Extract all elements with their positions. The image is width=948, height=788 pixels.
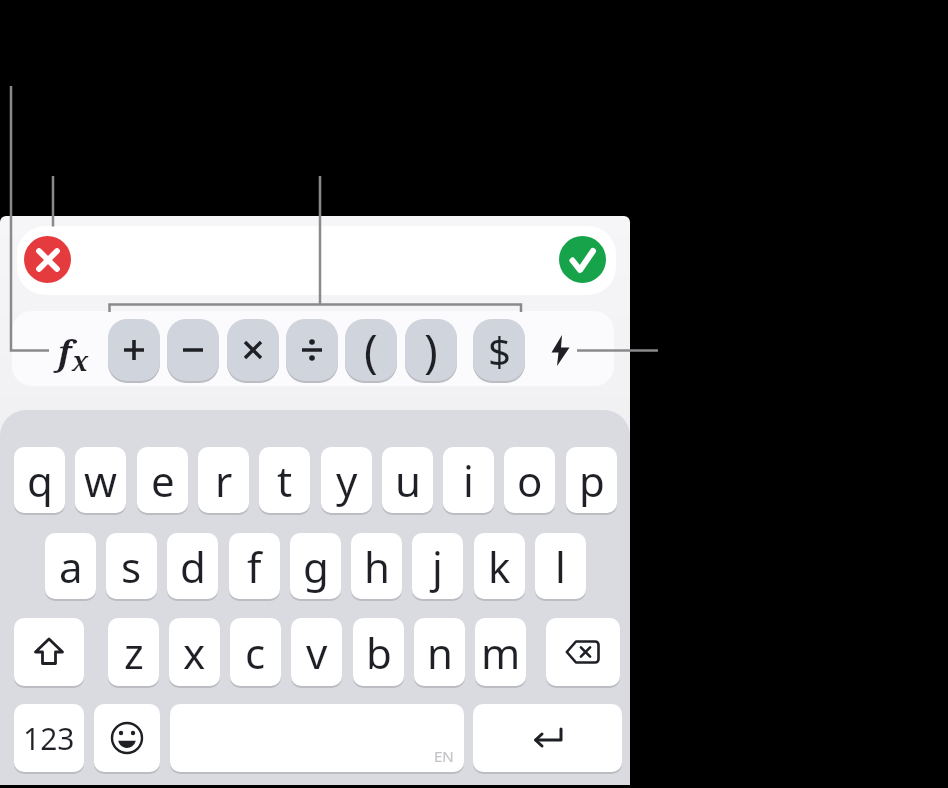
button[interactable]: 123 <box>14 704 84 772</box>
button[interactable] <box>227 319 279 381</box>
button[interactable]: q <box>14 447 65 513</box>
button[interactable] <box>473 704 622 772</box>
button[interactable]: v <box>291 618 342 686</box>
staticText: l <box>555 538 566 595</box>
button[interactable]: x <box>169 618 220 686</box>
button[interactable]: l <box>535 533 586 599</box>
button[interactable]: z <box>108 618 159 686</box>
button[interactable]: j <box>412 533 463 599</box>
button[interactable]: i <box>443 447 494 513</box>
staticText: EN <box>434 746 454 766</box>
staticText: k <box>488 538 511 595</box>
button[interactable]: w <box>75 447 126 513</box>
staticText: t <box>277 452 293 509</box>
staticText: a <box>59 538 83 595</box>
button[interactable]: ( <box>345 319 397 381</box>
button[interactable] <box>17 226 616 295</box>
button[interactable]: r <box>198 447 249 513</box>
staticText: ( <box>364 319 378 381</box>
staticText: e <box>151 452 175 509</box>
staticText: u <box>395 452 421 509</box>
staticText: g <box>303 538 329 595</box>
staticText: y <box>336 452 358 509</box>
button[interactable]: y <box>321 447 372 513</box>
staticText: w <box>84 452 118 509</box>
button[interactable]: e <box>137 447 188 513</box>
button[interactable] <box>14 618 84 686</box>
staticText: p <box>579 452 605 509</box>
staticText: q <box>27 452 53 509</box>
staticText: c <box>245 624 266 681</box>
staticText: $ <box>488 323 511 377</box>
staticText: x <box>72 342 89 379</box>
button[interactable] <box>94 704 160 772</box>
staticText: h <box>364 538 390 595</box>
staticText: i <box>463 452 474 509</box>
button[interactable]: s <box>106 533 157 599</box>
staticText: 123 <box>23 718 75 759</box>
staticText: o <box>517 452 543 509</box>
staticText: d <box>180 538 206 595</box>
staticText: r <box>215 452 233 509</box>
button[interactable]: $ <box>473 319 525 381</box>
button[interactable]: a <box>45 533 96 599</box>
staticText: s <box>121 538 142 595</box>
button[interactable]: EN <box>170 704 464 772</box>
button[interactable]: p <box>566 447 617 513</box>
button[interactable]: f <box>52 320 96 378</box>
button[interactable]: n <box>414 618 465 686</box>
button[interactable]: t <box>259 447 310 513</box>
button[interactable] <box>286 319 338 381</box>
button[interactable]: b <box>353 618 404 686</box>
staticText: x <box>183 624 206 681</box>
button[interactable]: k <box>474 533 525 599</box>
staticText: j <box>432 538 443 595</box>
staticText: v <box>306 624 328 681</box>
button[interactable]: c <box>230 618 281 686</box>
button[interactable] <box>108 319 160 381</box>
staticText: n <box>427 624 453 681</box>
button[interactable]: o <box>504 447 555 513</box>
button[interactable] <box>559 236 606 283</box>
button[interactable] <box>546 618 620 686</box>
button[interactable] <box>24 236 71 283</box>
button[interactable]: g <box>290 533 341 599</box>
staticText: f <box>247 538 262 595</box>
staticText: b <box>366 624 392 681</box>
staticText: f <box>58 329 72 375</box>
button[interactable]: f <box>229 533 280 599</box>
button[interactable] <box>544 328 576 372</box>
staticText: m <box>481 624 521 681</box>
staticText: ) <box>424 319 438 381</box>
button[interactable]: h <box>351 533 402 599</box>
button[interactable]: ) <box>405 319 457 381</box>
button[interactable] <box>167 319 219 381</box>
staticText: z <box>124 624 144 681</box>
button[interactable]: m <box>475 618 526 686</box>
button[interactable]: d <box>167 533 218 599</box>
button[interactable]: u <box>382 447 433 513</box>
